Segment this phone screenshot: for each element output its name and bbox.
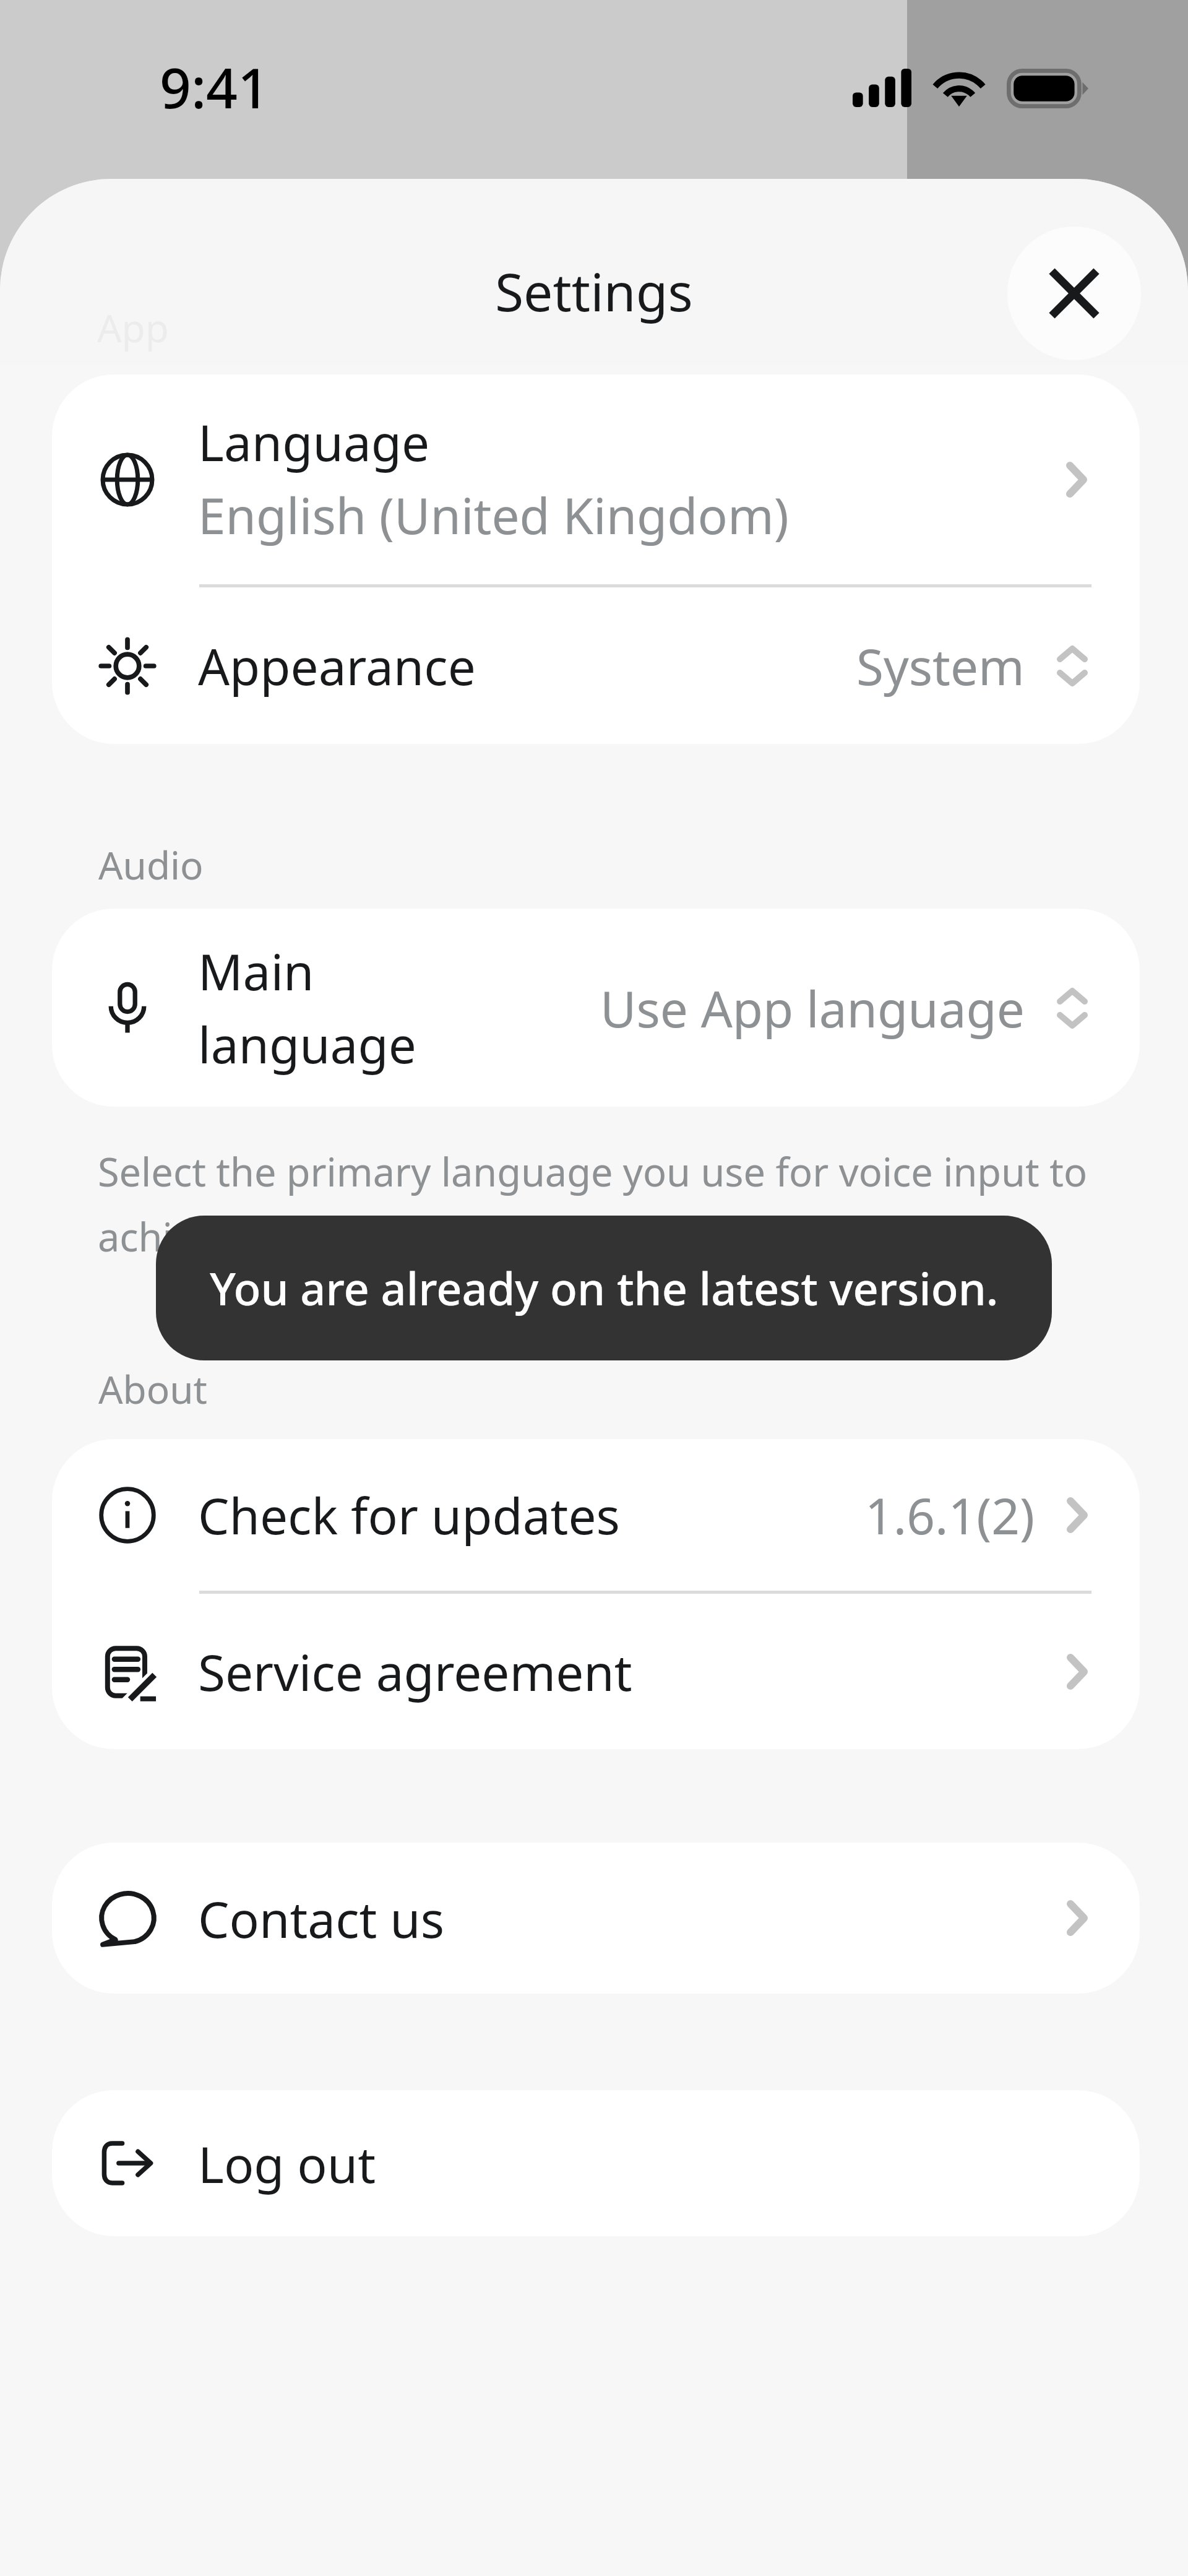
button[interactable]: Service agreement: [52, 1594, 1140, 1749]
staticText: English (United Kingdom): [198, 481, 789, 548]
staticText: Audio: [98, 839, 204, 891]
staticText: App: [97, 301, 169, 353]
staticText: 1.6.1(2): [865, 1481, 1035, 1549]
staticText: Select the primary language you use for …: [98, 1145, 1114, 1263]
staticText: Use App language: [600, 974, 1025, 1042]
staticText: About: [98, 1363, 207, 1415]
button[interactable]: Main language: [52, 909, 1140, 1107]
staticText: Service agreement: [198, 1638, 632, 1705]
staticText: Contact us: [198, 1885, 444, 1952]
staticText: Settings: [495, 256, 693, 326]
staticText: Check for updates: [198, 1481, 620, 1549]
button[interactable]: Contact us: [52, 1843, 1140, 1994]
staticText: You are already on the latest version.: [210, 1258, 999, 1318]
staticText: Log out: [198, 2130, 376, 2197]
button[interactable]: Log out: [52, 2090, 1140, 2236]
staticText: Main language: [198, 937, 470, 1078]
staticText: System: [856, 632, 1025, 699]
button[interactable]: Close: [1007, 227, 1141, 360]
button[interactable]: Appearance: [52, 587, 1140, 744]
staticText: Appearance: [198, 632, 476, 699]
staticText: Language: [198, 408, 430, 475]
button[interactable]: Language: [52, 374, 1140, 584]
button[interactable]: Check for updates: [52, 1439, 1140, 1591]
staticText: 9:41: [160, 50, 269, 124]
